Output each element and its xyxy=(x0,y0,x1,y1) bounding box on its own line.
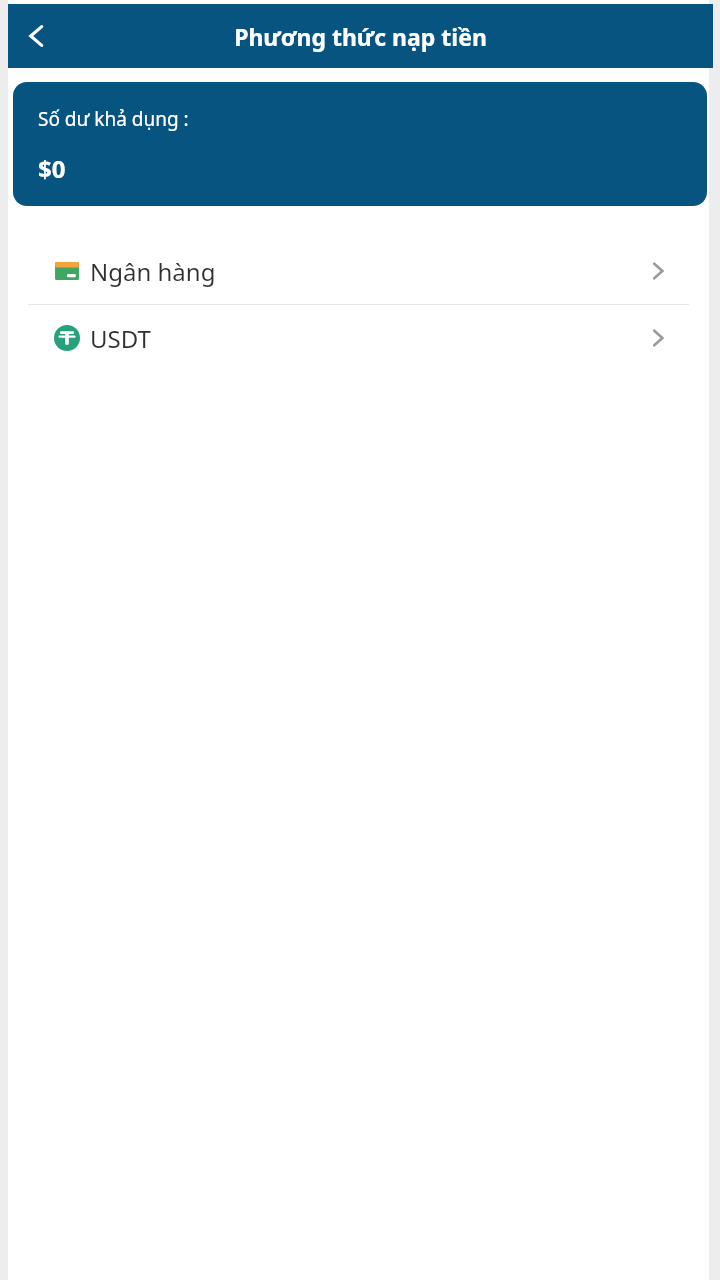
button[interactable]: USDT xyxy=(8,305,709,371)
staticText: Phương thức nạp tiền xyxy=(78,21,643,52)
staticText: $0 xyxy=(38,152,66,185)
staticText: Số dư khả dụng : xyxy=(38,106,189,132)
button[interactable]: Ngân hàng xyxy=(8,238,709,304)
staticText: Ngân hàng xyxy=(90,255,216,288)
staticText: USDT xyxy=(90,322,151,355)
button[interactable]: Back xyxy=(8,7,66,65)
button[interactable]: Số dư khả dụng : xyxy=(13,82,707,206)
